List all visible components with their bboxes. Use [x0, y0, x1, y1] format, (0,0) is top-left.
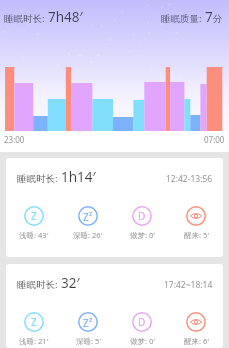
staticText: Z: [31, 315, 37, 329]
staticText: 睡眠时长:: [17, 278, 61, 291]
staticText: 睡眠时长:: [4, 12, 48, 25]
staticText: 醒来: 6′: [184, 336, 209, 346]
staticText: Z: [31, 209, 37, 223]
staticText: Z: [83, 316, 89, 330]
staticText: Z: [83, 210, 89, 224]
staticText: D: [138, 209, 146, 223]
staticText: 浅睡: 21′: [19, 336, 49, 346]
staticText: 做梦: 0′: [130, 230, 155, 240]
staticText: z: [89, 315, 93, 325]
staticText: 7: [205, 8, 213, 26]
button[interactable]: 深睡: [61, 206, 115, 240]
staticText: 深睡: 26′: [73, 230, 103, 240]
staticText: 浅睡: 43′: [19, 230, 49, 240]
button[interactable]: 醒来: [169, 312, 223, 346]
staticText: 睡眠时长:: [17, 172, 61, 185]
staticText: 分: [213, 13, 223, 25]
button[interactable]: 深睡: [61, 312, 115, 346]
button[interactable]: 浅睡: [6, 312, 61, 346]
button[interactable]: 睡眠时长:: [6, 264, 223, 348]
button[interactable]: 睡眠时长:: [6, 158, 223, 257]
staticText: z: [89, 209, 93, 219]
staticText: 07:00: [204, 134, 225, 145]
button[interactable]: 醒来: [169, 206, 223, 240]
staticText: 23:00: [4, 134, 25, 145]
button[interactable]: 做梦: [115, 312, 169, 346]
staticText: 深睡: 5′: [76, 336, 101, 346]
staticText: 7h48′: [48, 8, 83, 26]
staticText: 醒来: 5′: [184, 230, 209, 240]
staticText: 做梦: 0′: [130, 336, 155, 346]
staticText: 1h14′: [61, 168, 96, 186]
button[interactable]: 浅睡: [6, 206, 61, 240]
staticText: 12:42-13:56: [166, 173, 213, 185]
staticText: 32′: [61, 274, 80, 292]
button[interactable]: 做梦: [115, 206, 169, 240]
staticText: 睡眠质量:: [161, 12, 205, 25]
staticText: 17:42~18:14: [164, 279, 213, 291]
staticText: D: [138, 315, 146, 329]
